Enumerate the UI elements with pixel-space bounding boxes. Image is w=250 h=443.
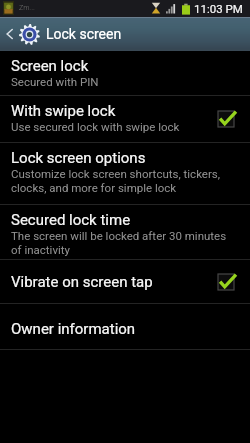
button[interactable]: With swipe lock bbox=[0, 96, 250, 142]
button[interactable]: Secured lock time bbox=[0, 205, 250, 259]
other: Alarm bbox=[151, 2, 161, 14]
staticText: With swipe lock bbox=[11, 102, 116, 120]
button[interactable]: Owner information bbox=[0, 304, 250, 349]
staticText: The screen will be locked after 30 minut… bbox=[11, 229, 227, 257]
staticText: Customize lock screen shortcuts, tickers… bbox=[11, 167, 221, 195]
other: Toggle bbox=[218, 111, 236, 127]
button[interactable]: Screen lock bbox=[0, 51, 250, 95]
staticText: Secured lock time bbox=[11, 211, 131, 229]
staticText: Zm... bbox=[19, 4, 35, 12]
staticText: Lock screen bbox=[46, 26, 122, 42]
other: Navigate up bbox=[5, 27, 15, 41]
staticText: Screen lock bbox=[11, 57, 89, 75]
button[interactable]: Lock screen options bbox=[0, 143, 250, 204]
staticText: Use secured lock with swipe lock bbox=[11, 120, 180, 133]
staticText: Owner information bbox=[11, 320, 136, 338]
button[interactable]: Navigate up bbox=[0, 17, 250, 51]
staticText: Secured with PIN bbox=[11, 75, 99, 88]
other: Toggle bbox=[218, 274, 236, 290]
staticText: 11:03 PM bbox=[194, 2, 243, 15]
button[interactable]: Vibrate on screen tap bbox=[0, 260, 250, 303]
staticText: Vibrate on screen tap bbox=[11, 273, 153, 291]
staticText: Lock screen options bbox=[11, 149, 146, 167]
